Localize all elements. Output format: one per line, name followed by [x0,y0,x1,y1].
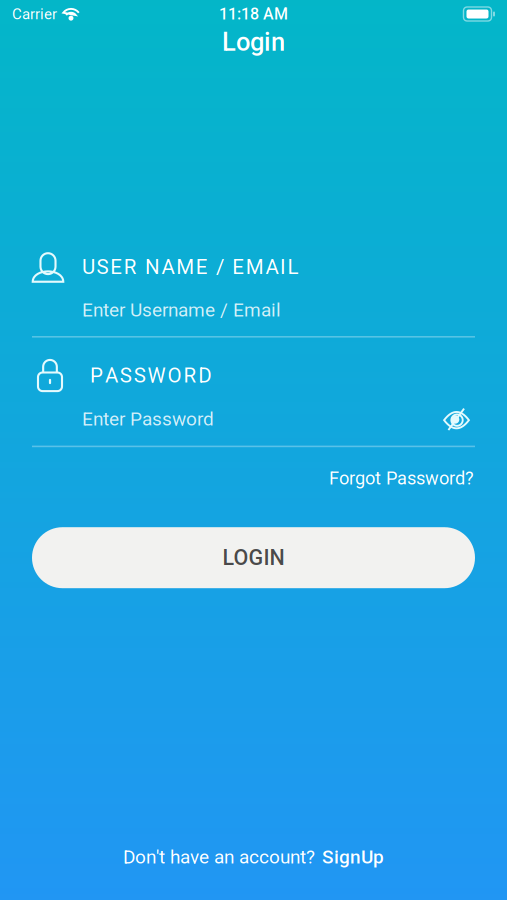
button[interactable]: Forgot Password? [329,462,475,494]
staticText: L [288,255,299,279]
staticText: M [246,255,264,279]
staticText: Forgot Password? [329,467,474,489]
staticText: R [183,364,196,388]
staticText: E [110,255,122,279]
staticText: R [124,255,137,279]
staticText: W [148,364,166,388]
staticText: S [120,364,132,388]
staticText: Enter Password [82,408,214,430]
staticText: U [82,255,95,279]
staticText: M [176,255,194,279]
button[interactable]: Don't have an account? [0,835,507,879]
staticText: S [134,364,146,388]
staticText: / [216,255,224,279]
staticText: I [280,255,286,279]
staticText: A [162,255,175,279]
staticText: Don't have an account? [123,846,315,868]
staticText: Enter Username / Email [82,299,281,321]
staticText: SignUp [322,846,384,868]
staticText: E [232,255,244,279]
staticText: LOGIN [222,545,284,570]
staticText: N [145,255,160,279]
staticText: Carrier [12,5,57,23]
staticText: D [198,364,211,388]
staticText: O [167,364,181,388]
staticText: A [265,255,278,279]
button[interactable]: LOGIN [32,527,475,588]
staticText: E [196,255,208,279]
staticText: Login [222,27,285,57]
staticText: P [90,364,103,388]
staticText: S [97,255,109,279]
button[interactable]: Show password [438,402,475,437]
staticText: A [105,364,118,388]
staticText: 11:18 AM [219,5,288,23]
